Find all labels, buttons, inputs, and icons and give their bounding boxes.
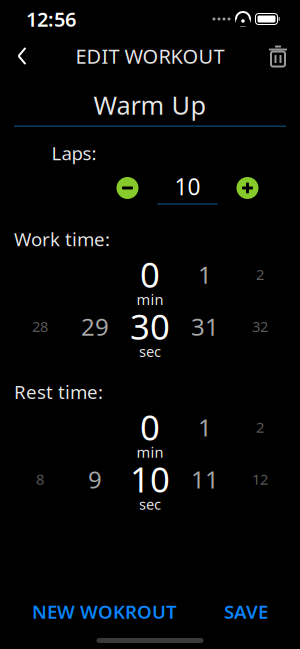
staticText: sec (139, 494, 161, 514)
staticText: 10 (130, 456, 170, 502)
staticText: 12:56 (26, 6, 76, 32)
staticText: Work time: (14, 226, 110, 251)
staticText: 30 (130, 303, 170, 349)
button[interactable]: SAVE (220, 591, 272, 632)
staticText: min (136, 290, 163, 309)
staticText: 32 (252, 317, 268, 336)
staticText: 2 (256, 417, 264, 437)
staticText: 31 (191, 310, 219, 342)
staticText: 0 (140, 251, 160, 297)
staticText: EDIT WORKOUT (75, 43, 224, 69)
staticText: Laps: (51, 141, 96, 165)
staticText: 1 (198, 258, 212, 290)
staticText: min (136, 442, 163, 462)
staticText: 9 (88, 463, 102, 495)
staticText: 1 (198, 411, 212, 443)
staticText: 28 (32, 317, 48, 336)
staticText: Rest time: (14, 379, 103, 404)
staticText: NEW WOKROUT (32, 599, 177, 624)
staticText: SAVE (224, 599, 268, 624)
staticText: sec (139, 342, 161, 361)
button[interactable]: Back (0, 36, 44, 76)
staticText: 11 (191, 463, 219, 495)
staticText: 29 (81, 310, 109, 342)
button[interactable]: Increase laps (232, 173, 262, 203)
staticText: 8 (36, 469, 44, 489)
staticText: 0 (140, 404, 160, 450)
button[interactable]: NEW WOKROUT (28, 591, 181, 632)
button[interactable]: Decrease laps (112, 173, 142, 203)
staticText: 2 (256, 265, 264, 284)
staticText: Warm Up (93, 88, 206, 122)
staticText: 10 (174, 171, 200, 201)
staticText: 12 (252, 469, 268, 489)
button[interactable]: Delete workout (256, 36, 300, 76)
